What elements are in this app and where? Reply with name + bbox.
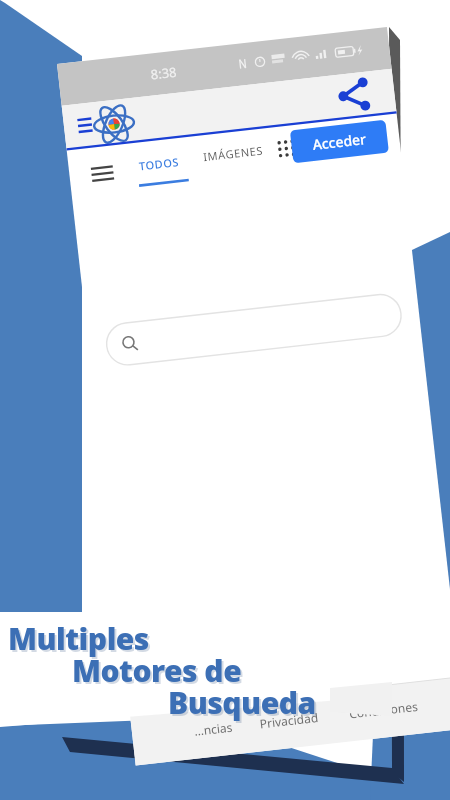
button[interactable]: Multiples Motores de Busqueda promo [0, 0, 450, 800]
